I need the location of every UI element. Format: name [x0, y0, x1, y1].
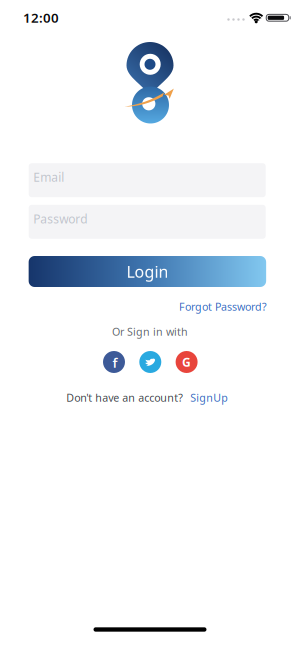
staticText: Forgot Password? [179, 299, 267, 314]
button[interactable]: Login [29, 256, 266, 287]
staticText: Login [126, 261, 168, 282]
staticText: SignUp [190, 390, 228, 405]
staticText: Password [33, 211, 87, 227]
staticText: 12:00 [23, 9, 59, 26]
button[interactable]: Sign in with Twitter [139, 351, 161, 373]
staticText: Don't have an account? [66, 390, 183, 405]
staticText: Or Sign in with [112, 324, 188, 339]
button[interactable]: Forgot Password? [179, 299, 267, 314]
button[interactable]: SignUp [190, 390, 228, 405]
staticText: f [112, 354, 117, 371]
staticText: G [182, 354, 191, 370]
button[interactable]: Sign in with Google [176, 351, 198, 373]
button[interactable]: Sign in with Facebook [103, 351, 125, 373]
button[interactable]: Password [29, 205, 266, 239]
staticText: Email [33, 169, 64, 185]
button[interactable]: Email [29, 163, 266, 197]
